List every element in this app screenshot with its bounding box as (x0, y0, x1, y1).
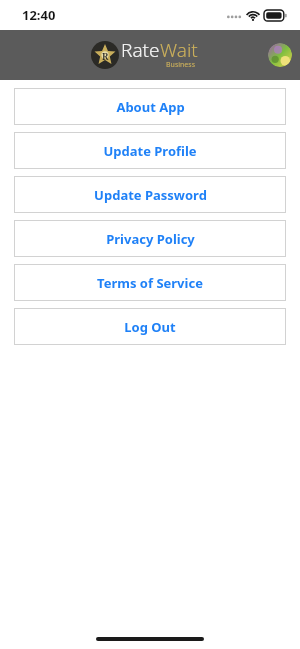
staticText: Rate (121, 37, 160, 63)
button[interactable]: Terms of Service (14, 264, 286, 301)
staticText: 12:40 (22, 6, 56, 24)
staticText: Log Out (124, 318, 176, 336)
button[interactable]: Update Profile (14, 132, 286, 169)
staticText: Wait (160, 37, 198, 63)
staticText: R (102, 50, 109, 62)
staticText: Update Password (94, 186, 207, 204)
button[interactable]: Update Password (14, 176, 286, 213)
staticText: Business (166, 60, 196, 70)
staticText: Update Profile (103, 142, 197, 160)
button[interactable]: About App (14, 88, 286, 125)
staticText: About App (116, 98, 185, 116)
button[interactable]: Profile (268, 43, 292, 67)
staticText: Privacy Policy (106, 230, 195, 248)
button[interactable]: Log Out (14, 308, 286, 345)
staticText: Terms of Service (97, 274, 203, 292)
button[interactable]: Privacy Policy (14, 220, 286, 257)
